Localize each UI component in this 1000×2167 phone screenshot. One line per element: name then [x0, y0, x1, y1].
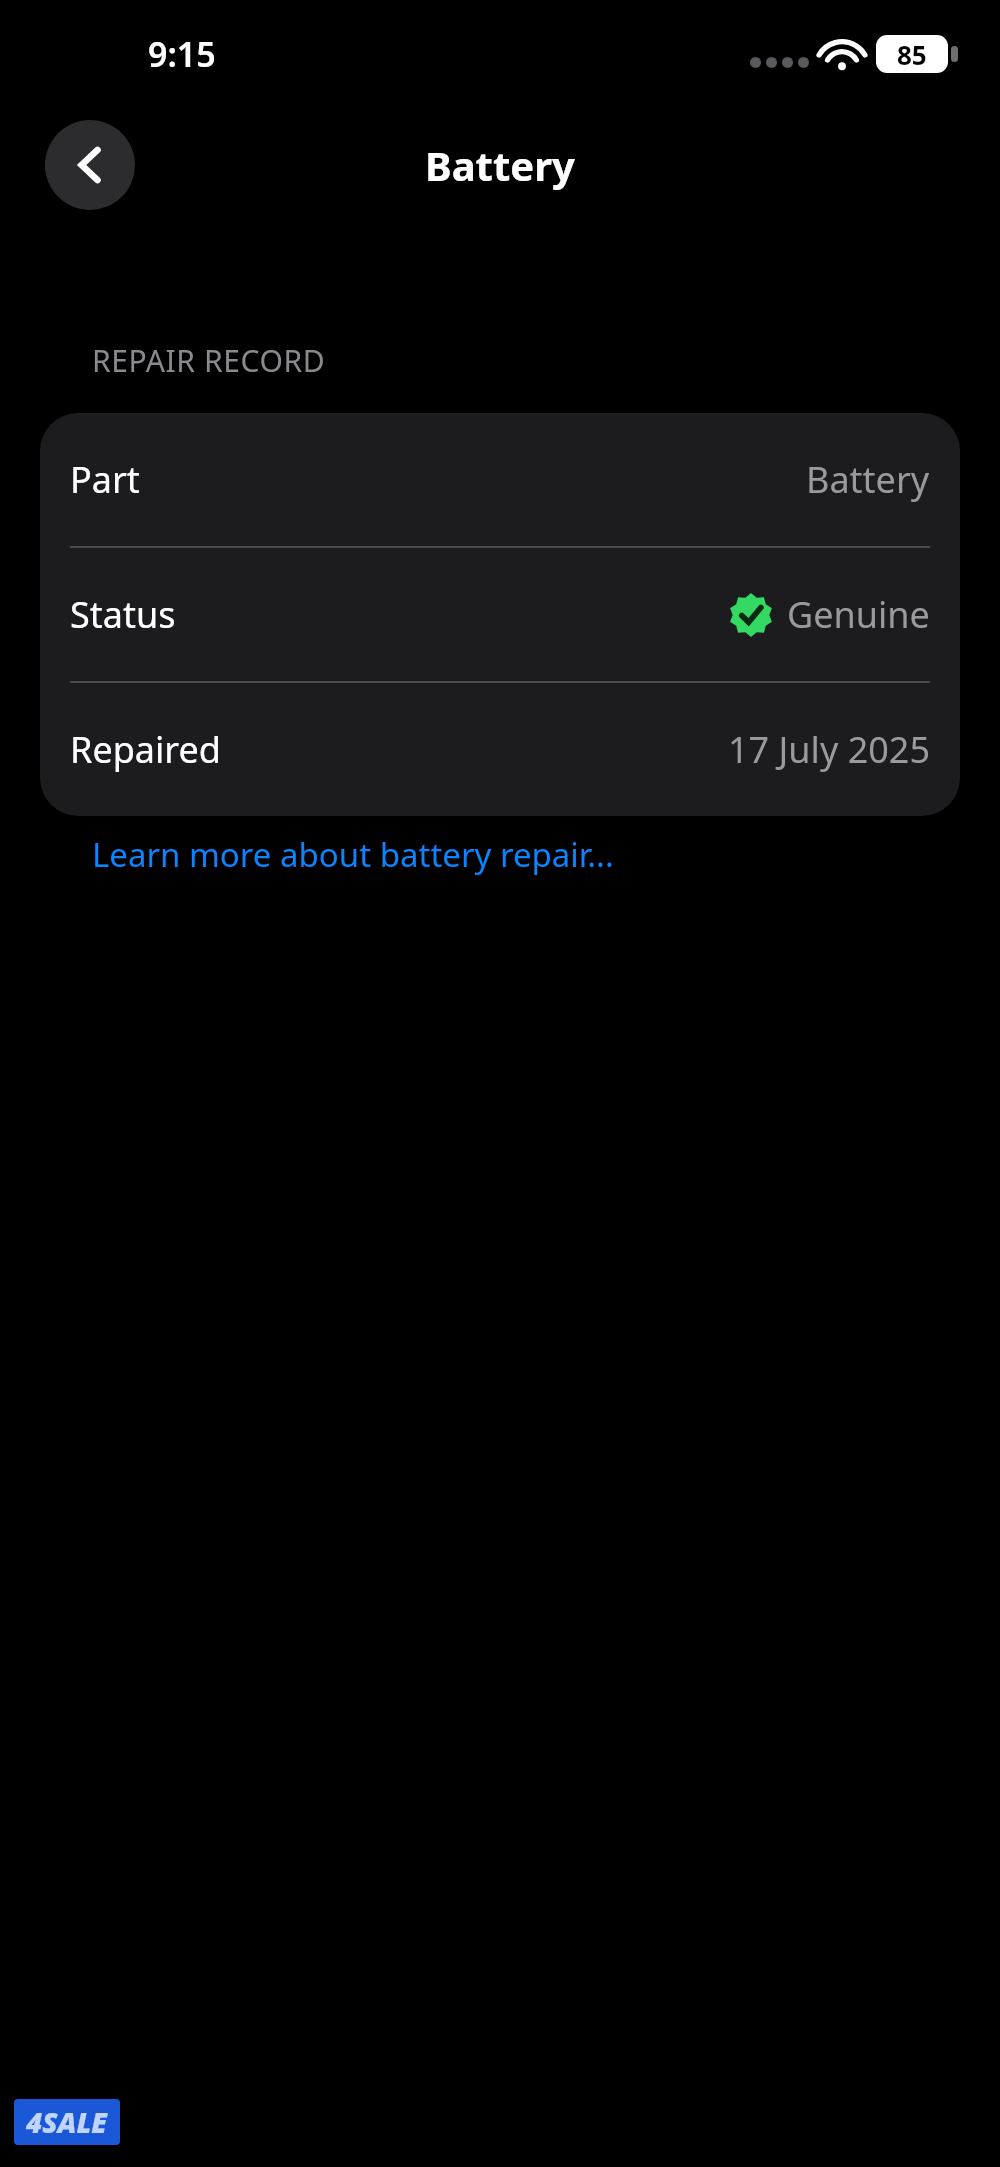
staticText: 9:15 — [148, 31, 216, 77]
button[interactable]: Back — [45, 120, 135, 210]
button[interactable]: Repaired — [40, 683, 960, 816]
staticText: Learn more about battery repair... — [92, 832, 614, 877]
staticText: Genuine — [787, 590, 930, 639]
staticText: Status — [70, 590, 176, 639]
staticText: 85 — [897, 37, 927, 72]
button[interactable]: Part — [40, 413, 960, 546]
button[interactable]: Status — [40, 548, 960, 681]
staticText: REPAIR RECORD — [92, 340, 326, 381]
staticText: Part — [70, 455, 140, 504]
staticText: Repaired — [70, 725, 221, 774]
staticText: 17 July 2025 — [728, 725, 930, 774]
button[interactable]: Learn more about battery repair... — [92, 832, 614, 877]
staticText: 4SALE — [26, 2103, 108, 2141]
staticText: Battery — [806, 455, 930, 504]
staticText: Battery — [425, 138, 575, 192]
